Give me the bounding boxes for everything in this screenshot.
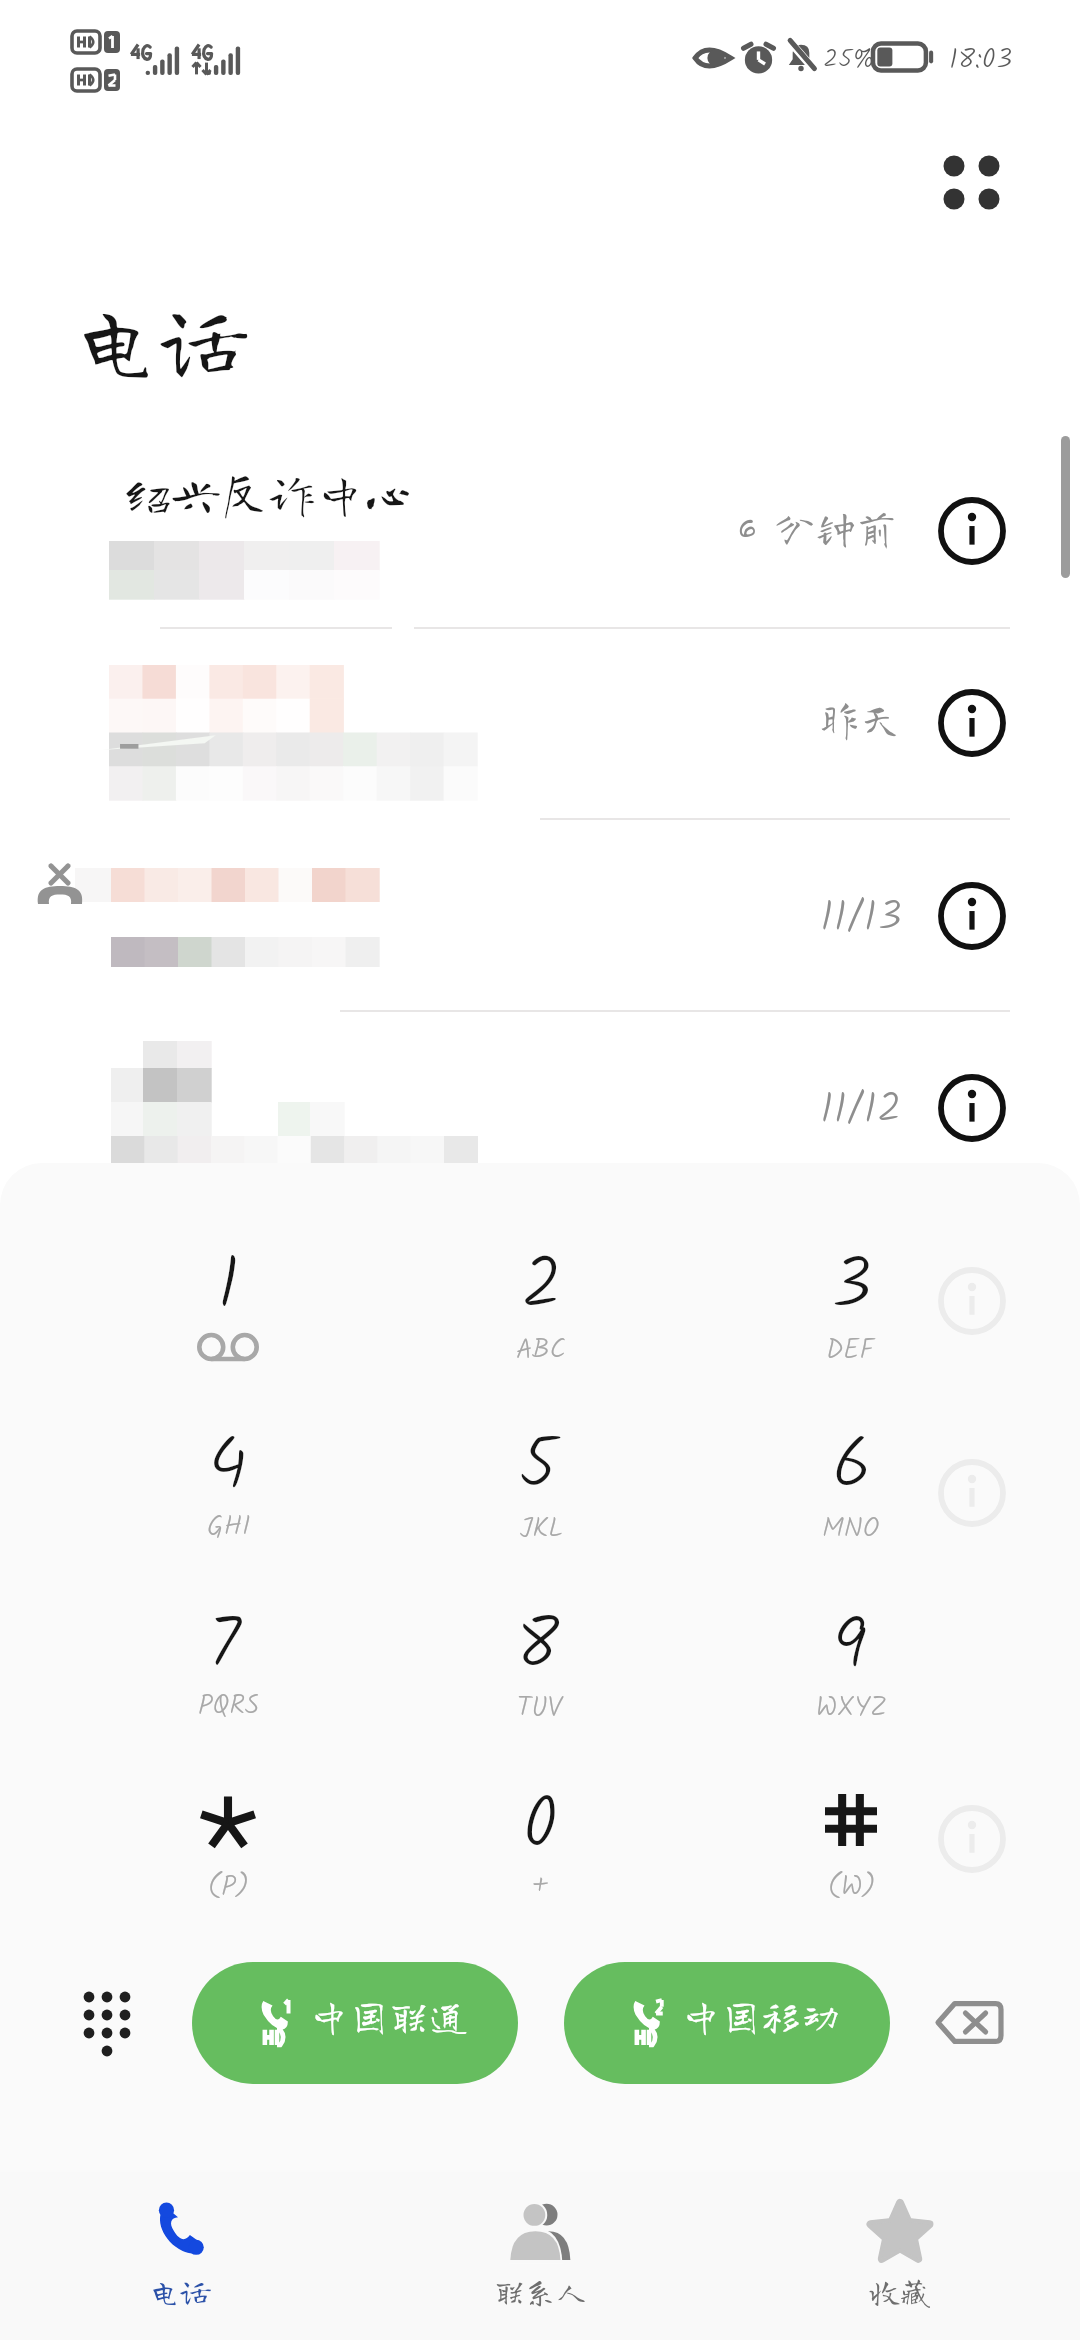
button[interactable]: 联系人	[360, 2172, 720, 2340]
staticText: 昨天	[819, 698, 901, 739]
staticText: 18:03	[949, 38, 1013, 83]
staticText: MNO	[822, 1508, 880, 1551]
button[interactable]	[420, 1413, 660, 1578]
staticText: 6 分钟前	[738, 507, 898, 548]
staticText: 7	[208, 1591, 241, 1704]
staticText: 9	[833, 1591, 867, 1704]
button[interactable]: 绍兴反诈中心	[0, 455, 1080, 627]
button[interactable]: 收藏	[720, 2172, 1080, 2340]
staticText: 中国联通	[309, 1996, 469, 2036]
button[interactable]: Keypad	[52, 1967, 156, 2075]
staticText: ABC	[516, 1329, 566, 1372]
staticText: 电话	[149, 2276, 211, 2307]
staticText: (W)	[828, 1866, 876, 1909]
button[interactable]: Call details	[924, 868, 1020, 964]
button[interactable]: 11/13	[0, 838, 1080, 1010]
button[interactable]	[731, 1593, 971, 1758]
button[interactable]	[420, 1233, 660, 1398]
staticText: WXYZ	[816, 1687, 887, 1730]
button[interactable]	[108, 1773, 348, 1938]
staticText: 联系人	[494, 2276, 587, 2307]
staticText: 25%	[823, 39, 875, 80]
staticText: PQRS	[198, 1685, 260, 1728]
button[interactable]	[731, 1233, 971, 1398]
staticText: 4	[208, 1411, 248, 1524]
button[interactable]: More options	[916, 126, 1028, 238]
button[interactable]	[420, 1593, 660, 1758]
staticText: +	[532, 1864, 549, 1907]
staticText: 5	[518, 1411, 558, 1524]
button[interactable]	[731, 1773, 971, 1938]
button[interactable]: 电话	[0, 2172, 360, 2340]
button[interactable]: Call details	[924, 675, 1020, 771]
staticText: 0	[523, 1771, 559, 1884]
staticText: 电话	[72, 295, 249, 383]
staticText: 中国移动	[681, 1996, 841, 2036]
staticText: 绍兴反诈中心	[124, 470, 413, 518]
staticText: DEF	[826, 1329, 874, 1372]
staticText: 2	[521, 1231, 563, 1344]
button[interactable]	[731, 1413, 971, 1578]
button[interactable]: Delete	[914, 1968, 1024, 2078]
staticText: 3	[830, 1231, 872, 1344]
staticText: 11/13	[820, 884, 902, 951]
button[interactable]: 昨天	[0, 645, 1080, 821]
staticText: JKL	[520, 1508, 563, 1551]
button[interactable]	[420, 1773, 660, 1938]
staticText: TUV	[517, 1687, 562, 1730]
staticText: 8	[516, 1591, 560, 1704]
button[interactable]: Call details	[924, 483, 1020, 579]
button[interactable]	[108, 1413, 348, 1578]
staticText: GHI	[207, 1506, 251, 1549]
staticText: 1	[217, 1231, 240, 1344]
button[interactable]	[108, 1593, 348, 1758]
button[interactable]: 中国联通	[192, 1962, 518, 2084]
staticText: 收藏	[869, 2276, 931, 2307]
button[interactable]: 11/12	[0, 1028, 1080, 1188]
staticText: (P)	[208, 1866, 249, 1909]
button[interactable]	[108, 1233, 348, 1398]
button[interactable]: Call details	[924, 1060, 1020, 1156]
staticText: 11/12	[820, 1076, 902, 1143]
staticText: 6	[832, 1411, 873, 1524]
button[interactable]: 中国移动	[564, 1962, 890, 2084]
